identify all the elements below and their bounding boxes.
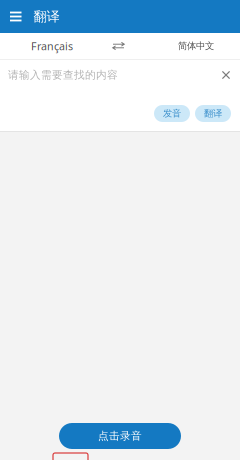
- staticText: 发音: [163, 108, 181, 119]
- staticText: 请输入需要查找的内容: [8, 68, 118, 81]
- button[interactable]: 翻译: [195, 105, 231, 122]
- staticText: 翻译: [204, 108, 222, 119]
- button[interactable]: Swap languages: [103, 33, 133, 59]
- button[interactable]: 点击录音: [59, 423, 181, 449]
- staticText: 点击录音: [98, 429, 142, 442]
- staticText: 简体中文: [178, 40, 214, 52]
- button[interactable]: Menu: [0, 0, 33, 33]
- staticText: Français: [31, 39, 73, 53]
- staticText: 翻译: [33, 8, 59, 25]
- button[interactable]: 发音: [154, 105, 190, 122]
- button[interactable]: Clear text: [213, 60, 239, 90]
- button[interactable]: Français: [14, 33, 90, 59]
- button[interactable]: 简体中文: [160, 33, 232, 59]
